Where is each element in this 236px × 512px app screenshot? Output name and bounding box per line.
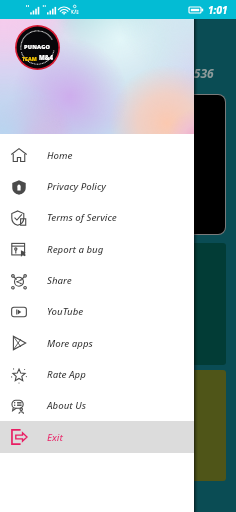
- button[interactable]: Privacy Policy: [0, 171, 194, 202]
- button[interactable]: Home: [0, 139, 194, 171]
- staticText: Exit: [47, 431, 63, 444]
- staticText: Rate App: [47, 368, 86, 381]
- button[interactable]: Exit: [0, 421, 194, 453]
- button[interactable]: Share: [0, 265, 194, 296]
- button[interactable]: More apps: [0, 327, 194, 359]
- button[interactable]: Terms of Service: [0, 202, 194, 233]
- staticText: Report a bug: [47, 243, 104, 256]
- button[interactable]: Report a bug: [0, 233, 194, 265]
- staticText: M&4: [39, 54, 54, 62]
- staticText: YouTube: [47, 305, 84, 318]
- button[interactable]: Rate App: [0, 359, 194, 390]
- staticText: Home: [47, 149, 73, 162]
- staticText: TEAM: [22, 55, 39, 62]
- staticText: More apps: [47, 337, 93, 350]
- staticText: 1:01: [208, 3, 228, 17]
- staticText: Privacy Policy: [47, 180, 106, 193]
- staticText: Share: [47, 274, 72, 287]
- staticText: About Us: [47, 399, 86, 412]
- staticText: Terms of Service: [47, 211, 117, 224]
- button[interactable]: YouTube: [0, 296, 194, 327]
- staticText: PUNAGO: [24, 43, 51, 51]
- button[interactable]: About Us: [0, 390, 194, 421]
- staticText: Coins : 42536: [140, 65, 214, 81]
